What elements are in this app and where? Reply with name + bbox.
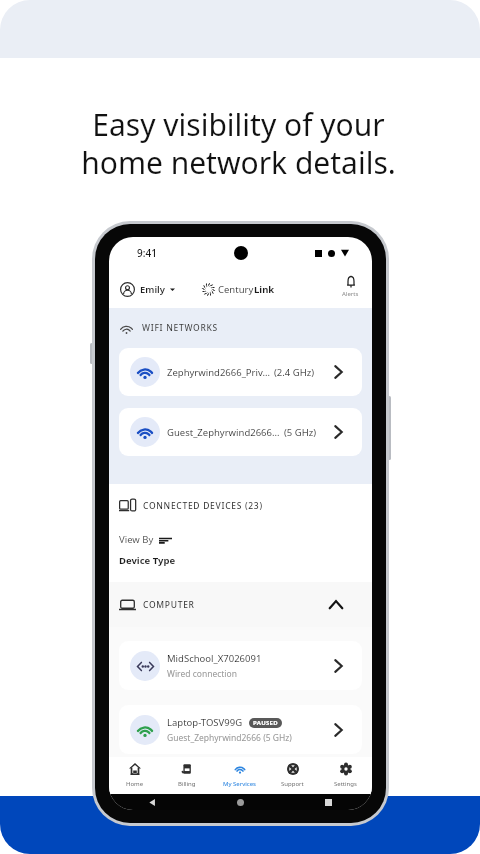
- staticText: Link: [254, 283, 275, 296]
- button[interactable]: Settings: [319, 757, 372, 794]
- staticText: MidSchool_X7026091: [167, 652, 262, 665]
- button[interactable]: Zephyrwind2666_Priv…: [119, 348, 362, 396]
- staticText: Settings: [334, 780, 357, 788]
- button[interactable]: MidSchool_X7026091: [119, 641, 362, 690]
- staticText: Device Type: [119, 554, 176, 567]
- staticText: CONNECTED DEVICES (23): [143, 500, 263, 512]
- staticText: Support: [281, 780, 304, 788]
- staticText: (5 GHz): [284, 426, 317, 439]
- staticText: Guest_Zephyrwind2666 (5 GHz): [167, 732, 292, 744]
- button[interactable]: Support: [266, 757, 319, 794]
- staticText: (2.4 GHz): [274, 366, 315, 379]
- staticText: 9:41: [137, 246, 157, 260]
- button[interactable]: Emily: [120, 282, 175, 297]
- button[interactable]: My Services: [213, 757, 266, 794]
- staticText: Alerts: [342, 290, 359, 298]
- staticText: Laptop-TOSV99G: [167, 716, 243, 729]
- staticText: View By: [119, 533, 154, 546]
- button[interactable]: Billing: [161, 757, 213, 794]
- staticText: WIFI NETWORKS: [142, 322, 218, 334]
- staticText: Emily: [140, 283, 166, 296]
- other: Home: [237, 799, 244, 806]
- button[interactable]: Alerts: [342, 275, 359, 298]
- staticText: Guest_Zephyrwind2666…: [167, 426, 280, 439]
- staticText: PAUSED: [253, 719, 278, 727]
- staticText: Easy visibility of your home network det…: [81, 104, 396, 183]
- staticText: Century: [218, 283, 254, 296]
- staticText: Wired connection: [167, 668, 237, 680]
- staticText: Billing: [178, 780, 196, 788]
- button[interactable]: Home: [109, 757, 161, 794]
- staticText: Home: [126, 780, 144, 788]
- button[interactable]: Laptop-TOSV99G: [119, 705, 362, 754]
- staticText: COMPUTER: [143, 599, 195, 611]
- button[interactable]: COMPUTER: [109, 582, 372, 627]
- button[interactable]: Guest_Zephyrwind2666…: [119, 408, 362, 456]
- staticText: My Services: [223, 780, 256, 788]
- staticText: Zephyrwind2666_Priv…: [167, 366, 270, 379]
- other: Back: [149, 799, 156, 806]
